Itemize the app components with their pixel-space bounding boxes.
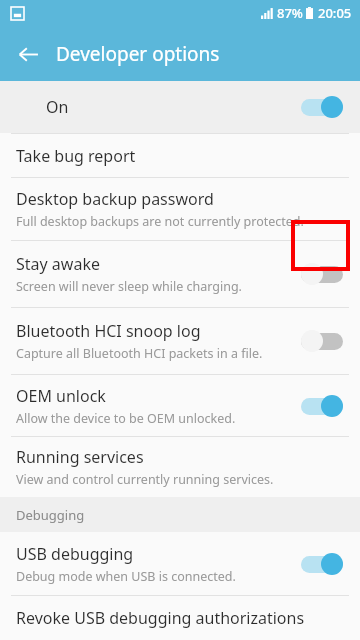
staticText: Allow the device to be OEM unlocked.: [16, 410, 236, 427]
staticText: Revoke USB debugging authorizations: [16, 607, 305, 629]
staticText: Stay awake: [16, 253, 100, 275]
button[interactable]: Running services: [0, 437, 360, 497]
staticText: Debugging: [16, 506, 85, 524]
staticText: Take bug report: [16, 145, 136, 167]
staticText: View and control currently running servi…: [16, 471, 274, 488]
button[interactable]: Desktop backup password: [0, 178, 360, 240]
button[interactable]: OEM unlock: [0, 375, 360, 436]
staticText: OEM unlock: [16, 385, 106, 407]
staticText: Bluetooth HCI snoop log: [16, 320, 201, 342]
staticText: USB debugging: [16, 543, 134, 565]
staticText: Desktop backup password: [16, 188, 214, 210]
staticText: On: [46, 96, 69, 118]
staticText: Running services: [16, 446, 144, 468]
staticText: Capture all Bluetooth HCI packets in a f…: [16, 345, 263, 362]
staticText: Screen will never sleep while charging.: [16, 278, 242, 295]
button[interactable]: Revoke USB debugging authorizations: [0, 596, 360, 640]
staticText: Debug mode when USB is connected.: [16, 568, 236, 585]
button[interactable]: Take bug report: [0, 134, 360, 177]
button[interactable]: On: [0, 81, 360, 133]
staticText: Full desktop backups are not currently p…: [16, 213, 304, 230]
staticText: 87%: [277, 4, 303, 22]
staticText: 20:05: [318, 4, 352, 22]
button[interactable]: Back: [8, 34, 48, 74]
button[interactable]: Bluetooth HCI snoop log: [0, 308, 360, 374]
button[interactable]: Stay awake: [0, 241, 360, 307]
staticText: Developer options: [56, 41, 220, 67]
button[interactable]: USB debugging: [0, 532, 360, 595]
